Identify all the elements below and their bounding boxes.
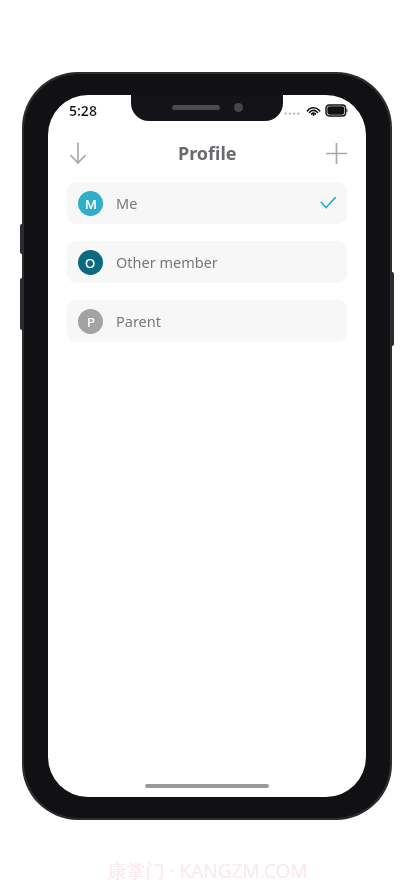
button[interactable]: Download bbox=[56, 131, 100, 175]
staticText: P bbox=[87, 313, 95, 331]
button[interactable]: Add bbox=[314, 131, 358, 175]
staticText: Parent bbox=[116, 311, 161, 331]
button[interactable]: M bbox=[67, 182, 347, 224]
staticText: O bbox=[85, 254, 96, 272]
staticText: Me bbox=[116, 193, 138, 213]
staticText: 5:28 bbox=[69, 101, 97, 120]
button[interactable]: O bbox=[67, 241, 347, 283]
staticText: Other member bbox=[116, 252, 218, 272]
button[interactable]: P bbox=[67, 300, 347, 342]
staticText: Profile bbox=[178, 141, 237, 166]
staticText: 康掌门 · KANGZM.COM bbox=[107, 858, 308, 884]
staticText: M bbox=[85, 195, 97, 213]
